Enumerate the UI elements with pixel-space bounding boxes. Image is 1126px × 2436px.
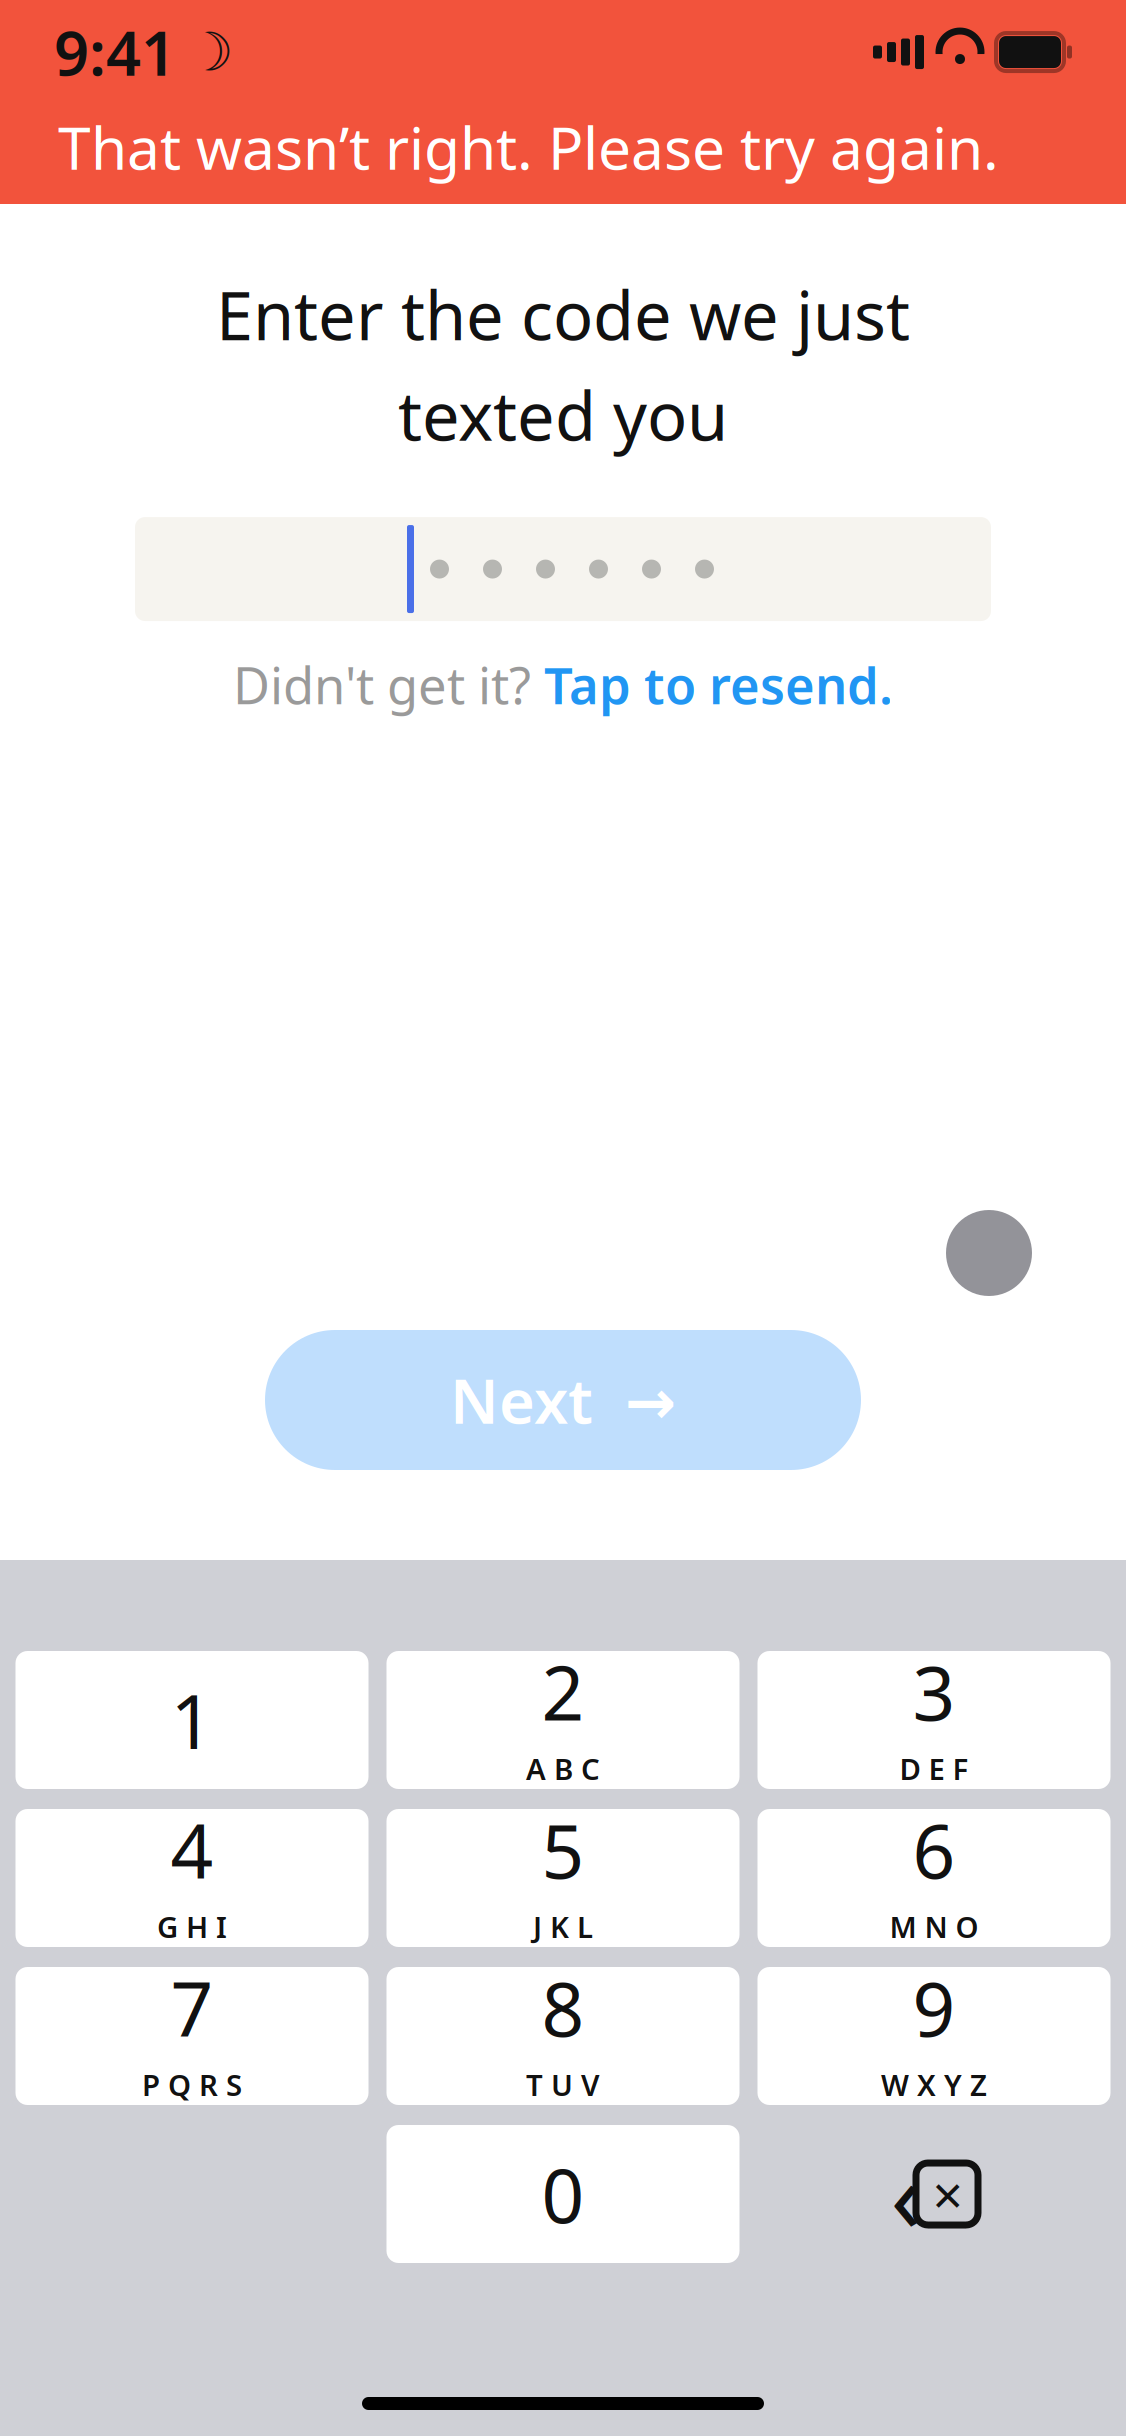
button[interactable]: 4 bbox=[15, 1809, 368, 1947]
staticText: 2 bbox=[541, 1642, 584, 1741]
staticText: 4 bbox=[170, 1800, 213, 1899]
staticText: A B C bbox=[526, 1749, 600, 1788]
staticText: Next → bbox=[450, 1359, 676, 1441]
staticText: 0 bbox=[541, 2144, 584, 2244]
staticText: M N O bbox=[889, 1907, 978, 1946]
staticText: 9 bbox=[912, 1958, 955, 2057]
staticText: That wasn’t right. Please try again. bbox=[58, 108, 999, 186]
button[interactable]: 1 bbox=[15, 1651, 368, 1789]
staticText: 5 bbox=[541, 1800, 584, 1899]
staticText: ☽ bbox=[186, 22, 234, 82]
button[interactable]: 6 bbox=[757, 1809, 1110, 1947]
staticText: Tap to resend. bbox=[544, 651, 893, 718]
staticText: × bbox=[932, 2159, 963, 2229]
staticText: 3 bbox=[912, 1642, 955, 1741]
button[interactable]: 3 bbox=[757, 1651, 1110, 1789]
staticText: T U V bbox=[526, 2065, 600, 2104]
staticText: 1 bbox=[170, 1670, 213, 1770]
button[interactable]: 0 bbox=[386, 2125, 739, 2263]
staticText: Didn't get it? bbox=[233, 651, 544, 718]
staticText: 7 bbox=[170, 1958, 213, 2057]
button[interactable]: 9 bbox=[757, 1967, 1110, 2105]
staticText: W X Y Z bbox=[881, 2065, 987, 2104]
staticText: 8 bbox=[541, 1958, 584, 2057]
button[interactable]: Delete bbox=[757, 2125, 1110, 2263]
staticText: J K L bbox=[533, 1907, 593, 1946]
staticText: ‹ bbox=[890, 2128, 921, 2259]
staticText: G H I bbox=[157, 1907, 227, 1946]
button[interactable]: 7 bbox=[15, 1967, 368, 2105]
button[interactable]: 2 bbox=[386, 1651, 739, 1789]
staticText: 6 bbox=[912, 1800, 955, 1899]
button[interactable]: Didn't get it? bbox=[213, 641, 913, 728]
button[interactable]: 8 bbox=[386, 1967, 739, 2105]
staticText: texted you bbox=[398, 370, 728, 459]
staticText: D E F bbox=[899, 1749, 968, 1788]
button[interactable]: 5 bbox=[386, 1809, 739, 1947]
staticText: 9:41 bbox=[54, 11, 176, 93]
button[interactable]: Next → bbox=[265, 1330, 861, 1470]
staticText: Enter the code we just bbox=[216, 270, 910, 358]
staticText: P Q R S bbox=[142, 2065, 242, 2104]
